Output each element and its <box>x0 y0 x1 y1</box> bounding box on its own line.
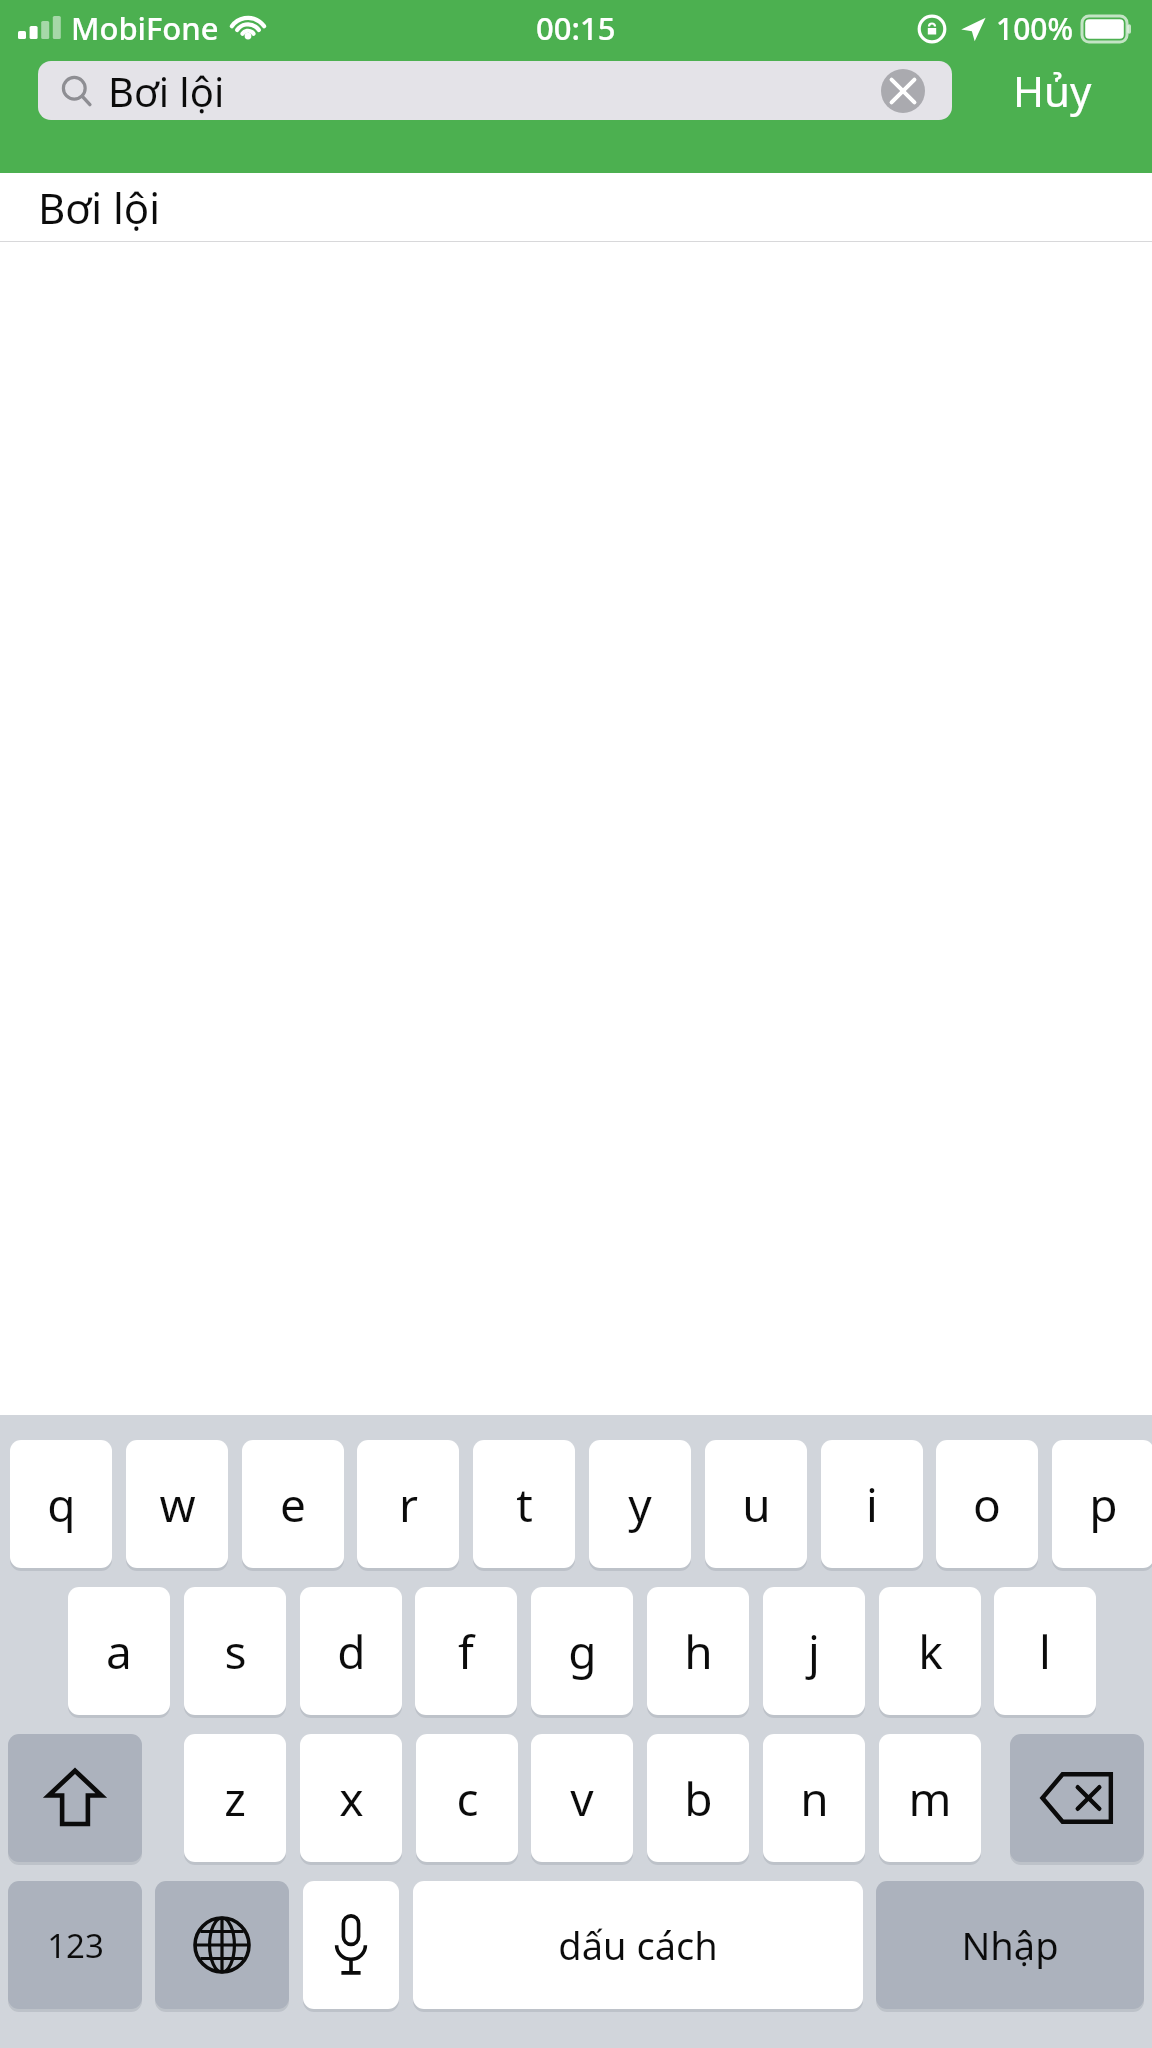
button[interactable]: Hủy <box>952 60 1152 120</box>
staticText: a <box>106 1620 132 1683</box>
button[interactable]: g <box>531 1587 633 1715</box>
staticText: 00:15 <box>536 7 616 49</box>
staticText: u <box>742 1473 771 1536</box>
staticText: 123 <box>47 1923 104 1968</box>
button[interactable]: n <box>763 1734 865 1862</box>
button[interactable]: z <box>184 1734 286 1862</box>
staticText: n <box>800 1767 829 1830</box>
staticText: z <box>224 1767 246 1830</box>
staticText: b <box>684 1767 713 1830</box>
button[interactable]: u <box>705 1440 807 1568</box>
staticText: k <box>918 1620 943 1683</box>
staticText: dấu cách <box>558 1919 718 1971</box>
staticText: Bơi lội <box>38 179 161 236</box>
staticText: Nhập <box>961 1919 1059 1971</box>
button[interactable]: Bơi lội <box>0 173 1152 241</box>
button[interactable]: Backspace <box>1010 1734 1144 1862</box>
staticText: d <box>337 1620 366 1683</box>
staticText: Bơi lội <box>108 64 225 118</box>
staticText: j <box>808 1620 820 1683</box>
staticText: h <box>684 1620 713 1683</box>
button[interactable]: Bơi lội <box>38 61 952 120</box>
button[interactable]: x <box>300 1734 402 1862</box>
staticText: m <box>908 1767 952 1830</box>
staticText: t <box>516 1473 533 1536</box>
button[interactable]: p <box>1052 1440 1152 1568</box>
staticText: y <box>628 1473 652 1536</box>
button[interactable]: Clear text <box>881 69 925 113</box>
button[interactable]: w <box>126 1440 228 1568</box>
button[interactable]: v <box>531 1734 633 1862</box>
button[interactable]: j <box>763 1587 865 1715</box>
button[interactable]: Voice input <box>303 1881 399 2009</box>
staticText: i <box>866 1473 878 1536</box>
staticText: g <box>568 1620 597 1683</box>
button[interactable]: Nhập <box>876 1881 1144 2009</box>
staticText: 100% <box>996 8 1074 49</box>
button[interactable]: f <box>415 1587 517 1715</box>
staticText: MobiFone <box>71 7 219 49</box>
staticText: f <box>458 1620 474 1683</box>
staticText: w <box>159 1473 196 1536</box>
staticText: r <box>399 1473 418 1536</box>
staticText: p <box>1089 1473 1118 1536</box>
button[interactable]: l <box>994 1587 1096 1715</box>
button[interactable]: q <box>10 1440 112 1568</box>
staticText: x <box>339 1767 364 1830</box>
button[interactable]: Shift <box>8 1734 142 1862</box>
button[interactable]: m <box>879 1734 981 1862</box>
button[interactable]: b <box>647 1734 749 1862</box>
button[interactable]: Change keyboard language <box>155 1881 289 2009</box>
staticText: q <box>47 1473 76 1536</box>
button[interactable]: y <box>589 1440 691 1568</box>
staticText: v <box>570 1767 594 1830</box>
staticText: Hủy <box>1013 62 1092 119</box>
button[interactable]: a <box>68 1587 170 1715</box>
staticText: c <box>456 1767 479 1830</box>
button[interactable]: h <box>647 1587 749 1715</box>
staticText: o <box>973 1473 1001 1536</box>
button[interactable]: dấu cách <box>413 1881 863 2009</box>
staticText: l <box>1039 1620 1051 1683</box>
button[interactable]: e <box>242 1440 344 1568</box>
button[interactable]: k <box>879 1587 981 1715</box>
staticText: s <box>224 1620 247 1683</box>
button[interactable]: c <box>416 1734 518 1862</box>
button[interactable]: d <box>300 1587 402 1715</box>
button[interactable]: i <box>821 1440 923 1568</box>
button[interactable]: s <box>184 1587 286 1715</box>
button[interactable]: o <box>936 1440 1038 1568</box>
button[interactable]: t <box>473 1440 575 1568</box>
button[interactable]: r <box>357 1440 459 1568</box>
button[interactable]: 123 <box>8 1881 142 2009</box>
staticText: e <box>280 1473 306 1536</box>
